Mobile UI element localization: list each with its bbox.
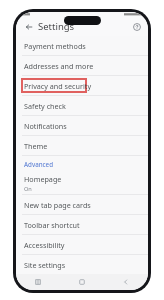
staticText: Payment methods	[24, 41, 86, 51]
button[interactable]: Payment methods	[16, 36, 148, 55]
staticText: Theme	[24, 141, 48, 151]
button[interactable]: New tab page cards	[16, 195, 148, 214]
button[interactable]: Recent apps	[16, 274, 60, 290]
staticText: Safety check	[24, 101, 66, 111]
staticText: Privacy and security	[24, 81, 92, 91]
staticText: Notifications	[24, 121, 67, 131]
staticText: Site settings	[24, 260, 66, 270]
button[interactable]: Back	[104, 274, 148, 290]
button[interactable]: Site settings	[16, 255, 148, 274]
button[interactable]: Toolbar shortcut	[16, 215, 148, 234]
button[interactable]: Notifications	[16, 116, 148, 135]
staticText: Homepage	[24, 174, 62, 184]
staticText: Accessibility	[24, 240, 65, 250]
button[interactable]: Accessibility	[16, 235, 148, 254]
staticText: Advanced	[24, 160, 53, 168]
button[interactable]: Home	[60, 274, 104, 290]
staticText: New tab page cards	[24, 200, 91, 210]
button[interactable]: Privacy and security	[16, 76, 148, 95]
staticText: Settings	[38, 20, 75, 33]
button[interactable]: Back	[22, 20, 35, 33]
staticText: Addresses and more	[24, 61, 94, 71]
button[interactable]: Help	[130, 20, 143, 33]
staticText: Toolbar shortcut	[24, 220, 80, 230]
button[interactable]: Homepage	[16, 172, 148, 194]
button[interactable]: Theme	[16, 136, 148, 155]
staticText: On	[24, 185, 32, 193]
button[interactable]: Safety check	[16, 96, 148, 115]
button[interactable]: Addresses and more	[16, 56, 148, 75]
